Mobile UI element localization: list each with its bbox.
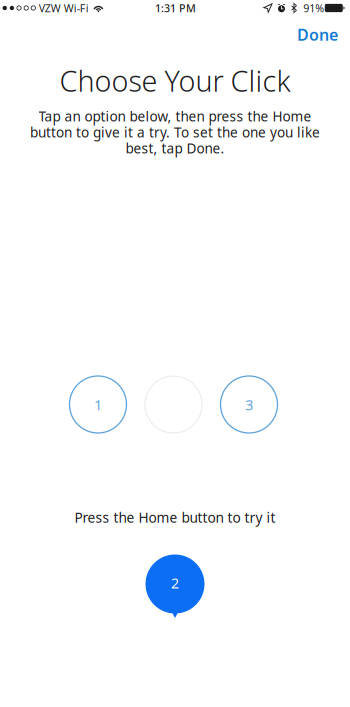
button[interactable]: Click option 2 xyxy=(145,376,202,433)
button[interactable]: Click option 3 xyxy=(220,376,277,433)
staticText: button to give it a try. To set the one … xyxy=(30,123,320,141)
staticText: 1 xyxy=(94,395,102,414)
staticText: best, tap Done. xyxy=(125,139,224,157)
staticText: 2 xyxy=(171,573,179,593)
button[interactable]: Done xyxy=(287,17,348,52)
button[interactable]: Click option 1 xyxy=(69,376,126,433)
staticText: 91% xyxy=(303,1,324,15)
staticText: Press the Home button to try it xyxy=(74,508,275,527)
staticText: VZW Wi-Fi xyxy=(39,1,89,15)
staticText: 3 xyxy=(245,395,253,414)
staticText: 1:31 PM xyxy=(155,1,196,15)
staticText: Choose Your Click xyxy=(59,61,290,100)
staticText: Tap an option below, then press the Home xyxy=(38,107,311,125)
staticText: Done xyxy=(297,24,338,45)
button[interactable]: Current click, 2 xyxy=(145,551,204,617)
